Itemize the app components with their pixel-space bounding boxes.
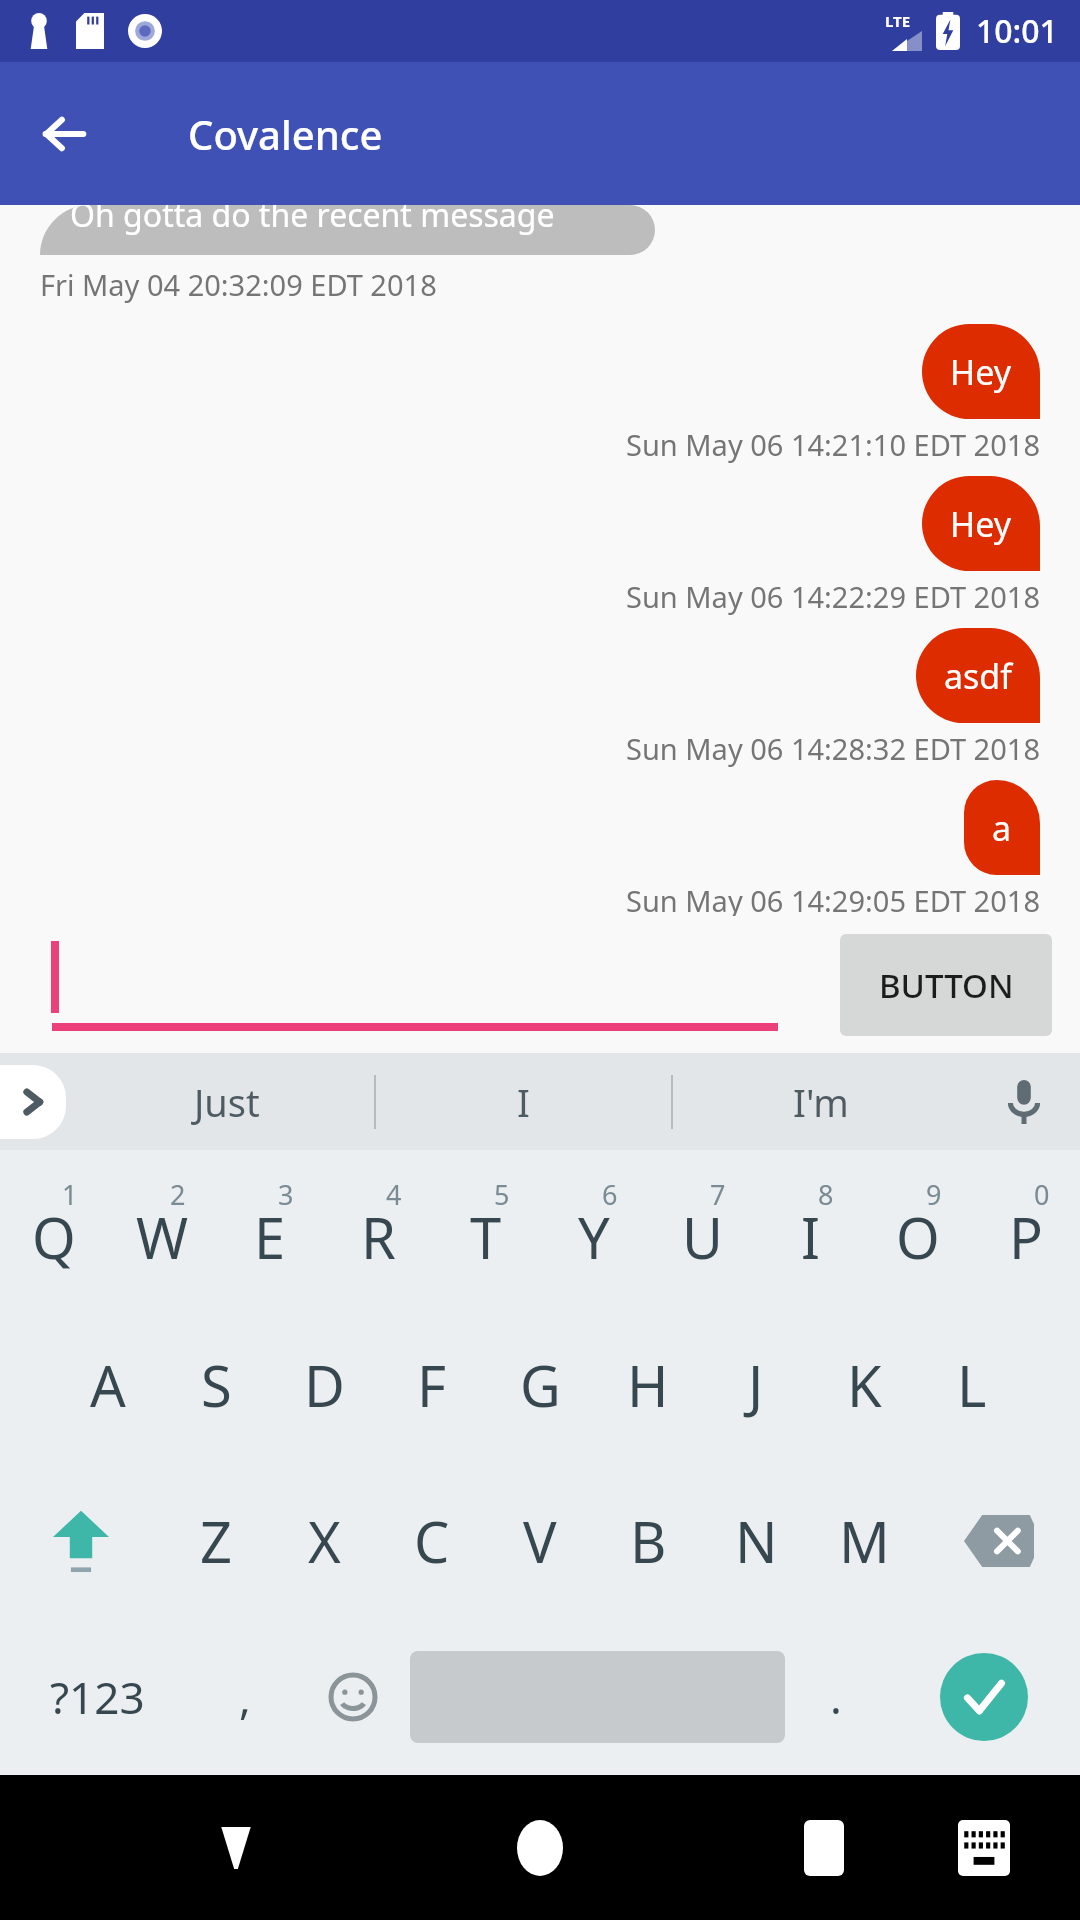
staticText: Q (32, 1199, 76, 1275)
button[interactable]: Oh gotta do the recent message (40, 205, 655, 255)
button[interactable]: 3 (216, 1150, 324, 1307)
button[interactable]: I (376, 1053, 671, 1150)
button[interactable]: Emoji (296, 1619, 410, 1775)
button[interactable]: Home (494, 1802, 586, 1894)
button[interactable]: L (918, 1307, 1026, 1463)
button[interactable]: asdf (916, 628, 1040, 723)
staticText: Sun May 06 14:28:32 EDT 2018 (626, 729, 1040, 768)
staticText: 4 (386, 1176, 402, 1213)
staticText: 6 (602, 1176, 618, 1213)
button[interactable]: J (702, 1307, 810, 1463)
button[interactable]: Shift (0, 1463, 162, 1619)
button[interactable]: Voice input (968, 1053, 1080, 1150)
button[interactable]: 2 (108, 1150, 216, 1307)
staticText: G (520, 1347, 561, 1423)
staticText: E (254, 1199, 286, 1275)
staticText: 9 (926, 1176, 942, 1213)
staticText: B (630, 1503, 667, 1579)
button[interactable]: 1 (0, 1150, 108, 1307)
button[interactable]: F (378, 1307, 486, 1463)
button[interactable]: 8 (756, 1150, 864, 1307)
staticText: D (304, 1347, 345, 1423)
staticText: F (417, 1347, 447, 1423)
staticText: BUTTON (879, 963, 1014, 1008)
button[interactable]: N (702, 1463, 810, 1619)
staticText: 5 (494, 1176, 510, 1213)
staticText: . (830, 1667, 842, 1727)
staticText: ?123 (50, 1667, 145, 1727)
button[interactable]: Recents (778, 1802, 870, 1894)
staticText: N (735, 1503, 778, 1579)
staticText: C (414, 1503, 450, 1579)
button[interactable]: Back (190, 1802, 282, 1894)
button[interactable]: 7 (648, 1150, 756, 1307)
staticText: 2 (170, 1176, 186, 1213)
staticText: I'm (793, 1076, 849, 1128)
staticText: Y (578, 1199, 610, 1275)
button[interactable]: Message input (52, 935, 778, 1035)
staticText: 3 (278, 1176, 294, 1213)
staticText: Sun May 06 14:21:10 EDT 2018 (626, 425, 1040, 464)
staticText: Fri May 04 20:32:09 EDT 2018 (40, 265, 437, 304)
staticText: 1 (62, 1176, 78, 1213)
staticText: X (308, 1503, 341, 1579)
button[interactable]: 4 (324, 1150, 432, 1307)
button[interactable]: M (810, 1463, 918, 1619)
staticText: T (470, 1199, 502, 1275)
staticText: L (957, 1347, 987, 1423)
button[interactable]: C (378, 1463, 486, 1619)
button[interactable]: BUTTON (840, 934, 1052, 1036)
button[interactable]: X (270, 1463, 378, 1619)
button[interactable]: K (810, 1307, 918, 1463)
staticText: Sun May 06 14:22:29 EDT 2018 (626, 577, 1040, 616)
staticText: Covalence (188, 107, 383, 161)
button[interactable]: 0 (972, 1150, 1080, 1307)
button[interactable]: 5 (432, 1150, 540, 1307)
staticText: Oh gotta do the recent message (70, 205, 555, 237)
button[interactable]: V (486, 1463, 594, 1619)
staticText: 0 (1034, 1176, 1050, 1213)
staticText: M (839, 1503, 890, 1579)
button[interactable]: . (785, 1619, 887, 1775)
staticText: Hey (950, 501, 1012, 547)
button[interactable]: Delete (918, 1463, 1080, 1619)
staticText: a (992, 805, 1012, 851)
button[interactable]: Just (80, 1053, 374, 1150)
button[interactable]: H (594, 1307, 702, 1463)
button[interactable]: G (486, 1307, 594, 1463)
button[interactable]: , (194, 1619, 296, 1775)
staticText: , (239, 1667, 251, 1727)
staticText: W (136, 1199, 189, 1275)
button[interactable]: B (594, 1463, 702, 1619)
button[interactable]: Enter (887, 1619, 1080, 1775)
button[interactable]: S (162, 1307, 270, 1463)
button[interactable]: 9 (864, 1150, 972, 1307)
staticText: I (801, 1199, 820, 1275)
button[interactable]: Hide keyboard (938, 1802, 1030, 1894)
button[interactable]: Z (162, 1463, 270, 1619)
staticText: J (748, 1347, 764, 1423)
button[interactable]: Hey (922, 476, 1040, 571)
button[interactable]: I'm (673, 1053, 968, 1150)
button[interactable]: Hey (922, 324, 1040, 419)
staticText: K (847, 1347, 882, 1423)
staticText: H (627, 1347, 669, 1423)
staticText: 8 (818, 1176, 834, 1213)
button[interactable]: D (270, 1307, 378, 1463)
staticText: A (90, 1347, 126, 1423)
staticText: I (517, 1076, 530, 1128)
staticText: Hey (950, 349, 1012, 395)
staticText: U (682, 1199, 723, 1275)
button[interactable]: 6 (540, 1150, 648, 1307)
button[interactable]: ?123 (0, 1619, 194, 1775)
staticText: R (361, 1199, 396, 1275)
button[interactable]: a (964, 780, 1040, 875)
staticText: 7 (710, 1176, 726, 1213)
staticText: asdf (944, 653, 1012, 699)
button[interactable]: A (54, 1307, 162, 1463)
button[interactable]: Back (26, 96, 102, 172)
staticText: Z (200, 1503, 233, 1579)
staticText: LTE (885, 11, 911, 31)
button[interactable]: Expand suggestions (0, 1065, 66, 1139)
